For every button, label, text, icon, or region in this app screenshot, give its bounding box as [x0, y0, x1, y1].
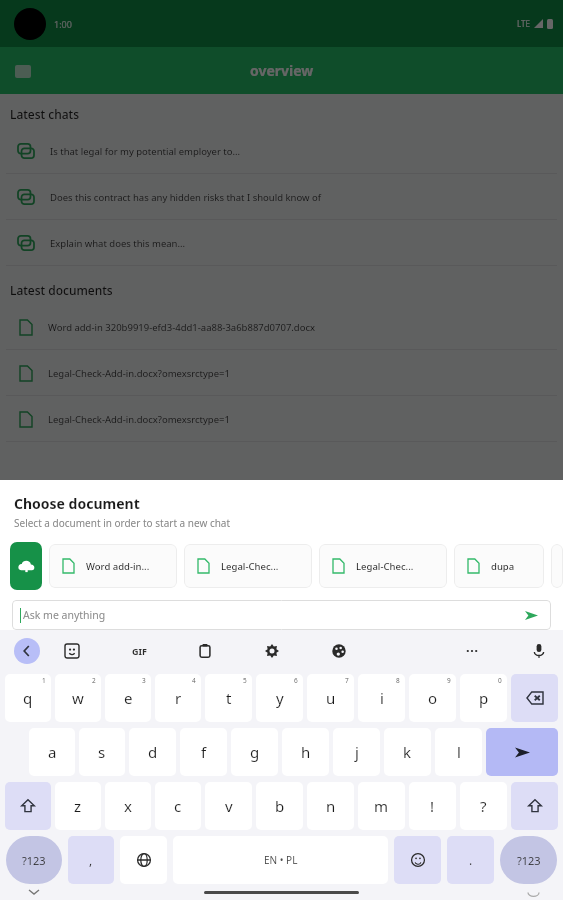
button[interactable]: s — [79, 728, 125, 776]
button[interactable]: a — [29, 728, 75, 776]
button[interactable]: Legal-Chec... — [319, 544, 447, 588]
button[interactable]: Legal-Check-Add-in.docx?omexsrctype=1 — [0, 396, 563, 442]
staticText: 7 — [345, 676, 349, 685]
button[interactable]: d — [129, 728, 176, 776]
staticText: ? — [480, 796, 487, 816]
staticText: u — [326, 688, 336, 708]
button[interactable]: e — [105, 674, 151, 722]
button[interactable]: Period — [447, 836, 494, 884]
button[interactable]: Legal-Check-Add-in.docx?omexsrctype=1 — [0, 350, 563, 396]
staticText: ?123 — [22, 853, 46, 868]
button[interactable]: m — [358, 782, 405, 830]
staticText: t — [226, 688, 232, 708]
staticText: Latest chats — [10, 106, 80, 122]
button[interactable]: Does this contract has any hidden risks … — [0, 174, 563, 220]
staticText: p — [479, 688, 489, 708]
staticText: Is that legal for my potential employer … — [50, 145, 241, 158]
button[interactable]: q — [5, 674, 51, 722]
staticText: 3 — [142, 676, 146, 685]
button[interactable]: Word add-in... — [49, 544, 177, 588]
button[interactable]: j — [333, 728, 380, 776]
button[interactable]: Shift right — [511, 782, 558, 830]
button[interactable]: b — [256, 782, 303, 830]
button[interactable]: Upload document — [10, 542, 42, 590]
staticText: z — [74, 796, 82, 816]
button[interactable]: Send — [519, 603, 543, 627]
button[interactable]: c — [155, 782, 201, 830]
button[interactable]: Word add-in 320b9919-efd3-4dd1-aa88-3a6b… — [0, 304, 563, 350]
button[interactable]: z — [55, 782, 101, 830]
button[interactable]: GIF — [127, 639, 151, 663]
staticText: v — [225, 796, 233, 816]
button[interactable]: i — [358, 674, 405, 722]
button[interactable]: Hide keyboard — [24, 884, 44, 900]
button[interactable] — [551, 544, 563, 588]
staticText: . — [469, 852, 473, 868]
button[interactable]: o — [409, 674, 456, 722]
button[interactable]: t — [205, 674, 252, 722]
button[interactable]: Back — [14, 638, 40, 664]
button[interactable]: Is that legal for my potential employer … — [0, 128, 563, 174]
button[interactable]: p — [460, 674, 507, 722]
button[interactable]: Explain what does this mean... — [0, 220, 563, 266]
staticText: 2 — [92, 676, 96, 685]
button[interactable]: ? — [460, 782, 507, 830]
staticText: 6 — [294, 676, 298, 685]
button[interactable]: Theme — [327, 639, 351, 663]
button[interactable]: Voice input — [527, 639, 551, 663]
staticText: x — [124, 796, 132, 816]
button[interactable]: l — [435, 728, 482, 776]
staticText: Legal-Check-Add-in.docx?omexsrctype=1 — [48, 367, 230, 380]
button[interactable]: r — [155, 674, 201, 722]
staticText: b — [275, 796, 285, 816]
staticText: m — [374, 796, 389, 816]
button[interactable]: Send — [486, 728, 558, 776]
button[interactable]: Emoji — [394, 836, 441, 884]
staticText: e — [124, 688, 133, 708]
button[interactable]: k — [384, 728, 431, 776]
staticText: k — [403, 742, 412, 762]
staticText: 9 — [447, 676, 451, 685]
button[interactable]: x — [105, 782, 151, 830]
button[interactable]: ! — [409, 782, 456, 830]
button[interactable]: Stickers — [60, 639, 84, 663]
button[interactable]: EN • PL — [173, 836, 388, 884]
staticText: a — [48, 742, 57, 762]
button[interactable]: w — [55, 674, 101, 722]
staticText: dupa — [491, 560, 515, 573]
button[interactable]: Shift — [5, 782, 51, 830]
button[interactable]: Clipboard — [193, 639, 217, 663]
button[interactable]: u — [307, 674, 354, 722]
button[interactable]: y — [256, 674, 303, 722]
button[interactable]: Backspace — [511, 674, 558, 722]
button[interactable]: ?123 — [500, 836, 557, 884]
button[interactable]: Language — [120, 836, 167, 884]
button[interactable]: More — [460, 639, 484, 663]
button[interactable]: Menu — [12, 60, 34, 82]
button[interactable]: Ask me anything — [12, 600, 551, 630]
button[interactable]: n — [307, 782, 354, 830]
staticText: Word add-in 320b9919-efd3-4dd1-aa88-3a6b… — [48, 321, 316, 334]
staticText: 4 — [192, 676, 196, 685]
button[interactable]: Keyboard layout — [525, 884, 541, 900]
staticText: Word add-in... — [86, 560, 150, 573]
staticText: i — [380, 688, 384, 708]
button[interactable]: h — [282, 728, 329, 776]
button[interactable]: g — [231, 728, 278, 776]
staticText: , — [89, 852, 93, 868]
staticText: Explain what does this mean... — [50, 237, 186, 250]
staticText: Choose document — [14, 494, 140, 513]
button[interactable]: Comma — [68, 836, 114, 884]
staticText: l — [457, 742, 461, 762]
button[interactable]: dupa — [454, 544, 544, 588]
staticText: 1:00 — [54, 18, 72, 30]
button[interactable]: Legal-Chec... — [184, 544, 312, 588]
staticText: EN • PL — [264, 853, 298, 867]
button[interactable]: ?123 — [6, 836, 62, 884]
button[interactable]: v — [205, 782, 252, 830]
button[interactable]: f — [180, 728, 227, 776]
staticText: j — [355, 742, 359, 762]
staticText: g — [250, 742, 260, 762]
staticText: GIF — [132, 645, 147, 657]
button[interactable]: Settings — [260, 639, 284, 663]
